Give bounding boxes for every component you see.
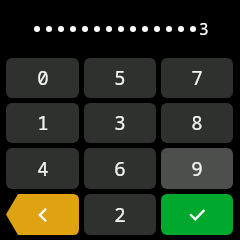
staticText: 4 bbox=[37, 156, 49, 182]
button[interactable]: 2 bbox=[84, 194, 156, 235]
staticText: 0 bbox=[37, 65, 49, 91]
staticText: 8 bbox=[191, 110, 203, 136]
staticText: 5 bbox=[114, 65, 126, 91]
button[interactable]: 4 bbox=[6, 148, 79, 189]
button[interactable]: 6 bbox=[84, 148, 156, 189]
button[interactable]: Delete bbox=[6, 194, 79, 235]
button[interactable]: 9 bbox=[161, 148, 233, 189]
button[interactable]: 5 bbox=[84, 58, 156, 98]
button[interactable]: 1 bbox=[6, 103, 79, 143]
button[interactable]: Confirm bbox=[161, 194, 233, 235]
staticText: 7 bbox=[191, 65, 203, 91]
button[interactable]: 8 bbox=[161, 103, 233, 143]
staticText: 2 bbox=[114, 202, 126, 228]
button[interactable]: 3 bbox=[84, 103, 156, 143]
button[interactable]: 7 bbox=[161, 58, 233, 98]
staticText: 6 bbox=[114, 156, 126, 182]
staticText: 1 bbox=[37, 110, 49, 136]
staticText: 3 bbox=[114, 110, 126, 136]
staticText: 3 bbox=[199, 18, 209, 40]
staticText: 9 bbox=[191, 156, 203, 182]
button[interactable]: 0 bbox=[6, 58, 79, 98]
